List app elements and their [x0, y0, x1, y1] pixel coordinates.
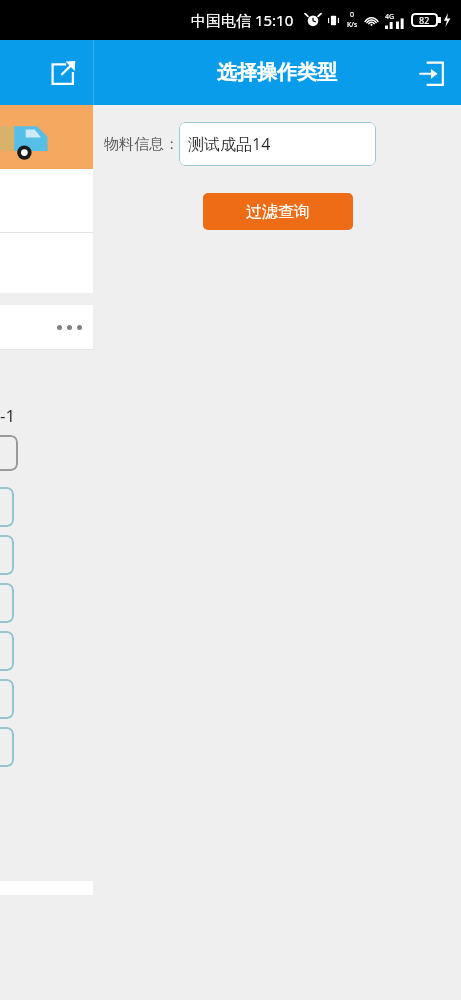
staticText: 0 — [350, 10, 355, 20]
button[interactable]: Share — [40, 50, 86, 96]
button[interactable] — [0, 631, 14, 671]
button[interactable] — [0, 535, 14, 575]
staticText: 4G — [385, 12, 395, 22]
button[interactable]: 测试成品14 — [179, 122, 376, 166]
button[interactable] — [0, 679, 14, 719]
staticText: 82 — [419, 14, 430, 26]
button[interactable] — [0, 435, 18, 471]
staticText: 物料信息： — [104, 135, 179, 154]
staticText: 选择操作类型 — [217, 60, 337, 85]
button[interactable] — [0, 583, 14, 623]
button[interactable] — [0, 305, 93, 349]
staticText: 过滤查询 — [246, 202, 310, 222]
staticText: 中国电信 15:10 — [191, 10, 294, 30]
staticText: -1 — [0, 404, 16, 427]
button[interactable]: Exit — [409, 51, 453, 95]
button[interactable]: 过滤查询 — [203, 193, 353, 230]
staticText: 测试成品14 — [188, 133, 271, 155]
button[interactable] — [0, 727, 14, 767]
staticText: K/s — [347, 20, 358, 30]
button[interactable] — [0, 487, 14, 527]
